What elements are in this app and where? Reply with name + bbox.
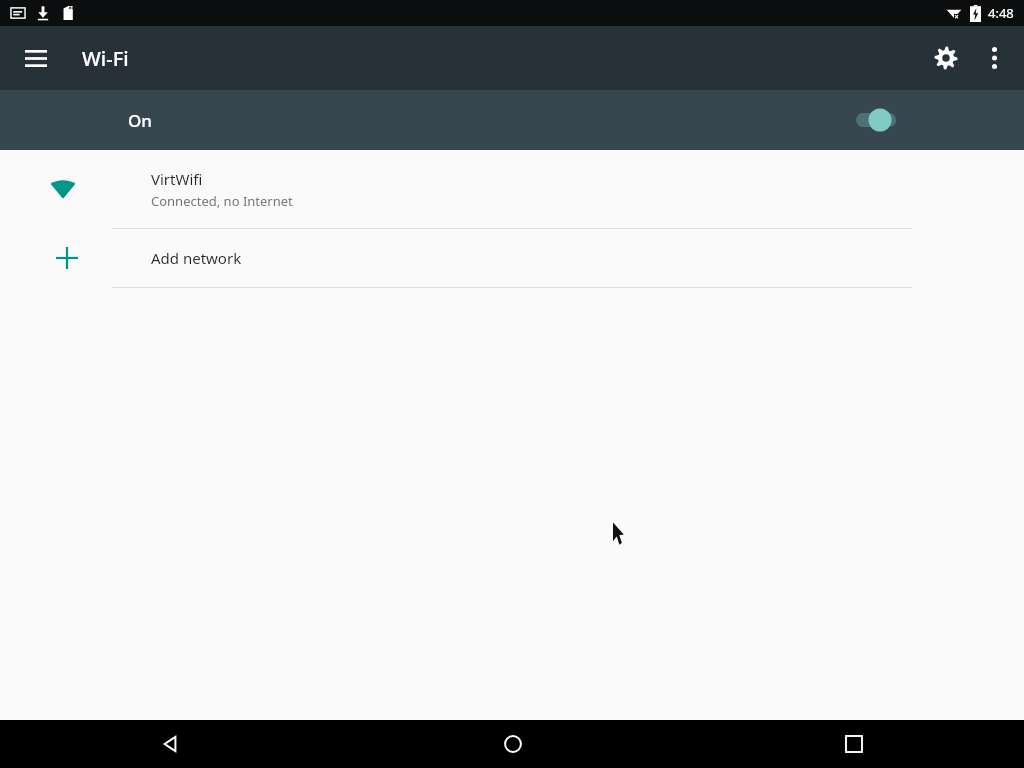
staticText: 4:48 (988, 4, 1014, 22)
button[interactable]: VirtWifi (0, 150, 1024, 228)
button[interactable]: Back (0, 720, 342, 768)
staticText: On (128, 109, 152, 132)
staticText: Add network (151, 248, 242, 268)
button[interactable]: Settings (922, 34, 970, 82)
staticText: VirtWifi (151, 169, 203, 189)
button[interactable]: More options (970, 34, 1018, 82)
button[interactable]: Open navigation drawer (12, 34, 60, 82)
button[interactable]: Recent apps (683, 720, 1024, 768)
button[interactable]: On (0, 90, 1024, 150)
staticText: Wi-Fi (82, 45, 129, 72)
staticText: Connected, no Internet (151, 192, 293, 210)
button[interactable]: Add network (0, 229, 1024, 287)
button[interactable]: Home (342, 720, 683, 768)
button[interactable]: Wi-Fi toggle, On (852, 100, 908, 140)
